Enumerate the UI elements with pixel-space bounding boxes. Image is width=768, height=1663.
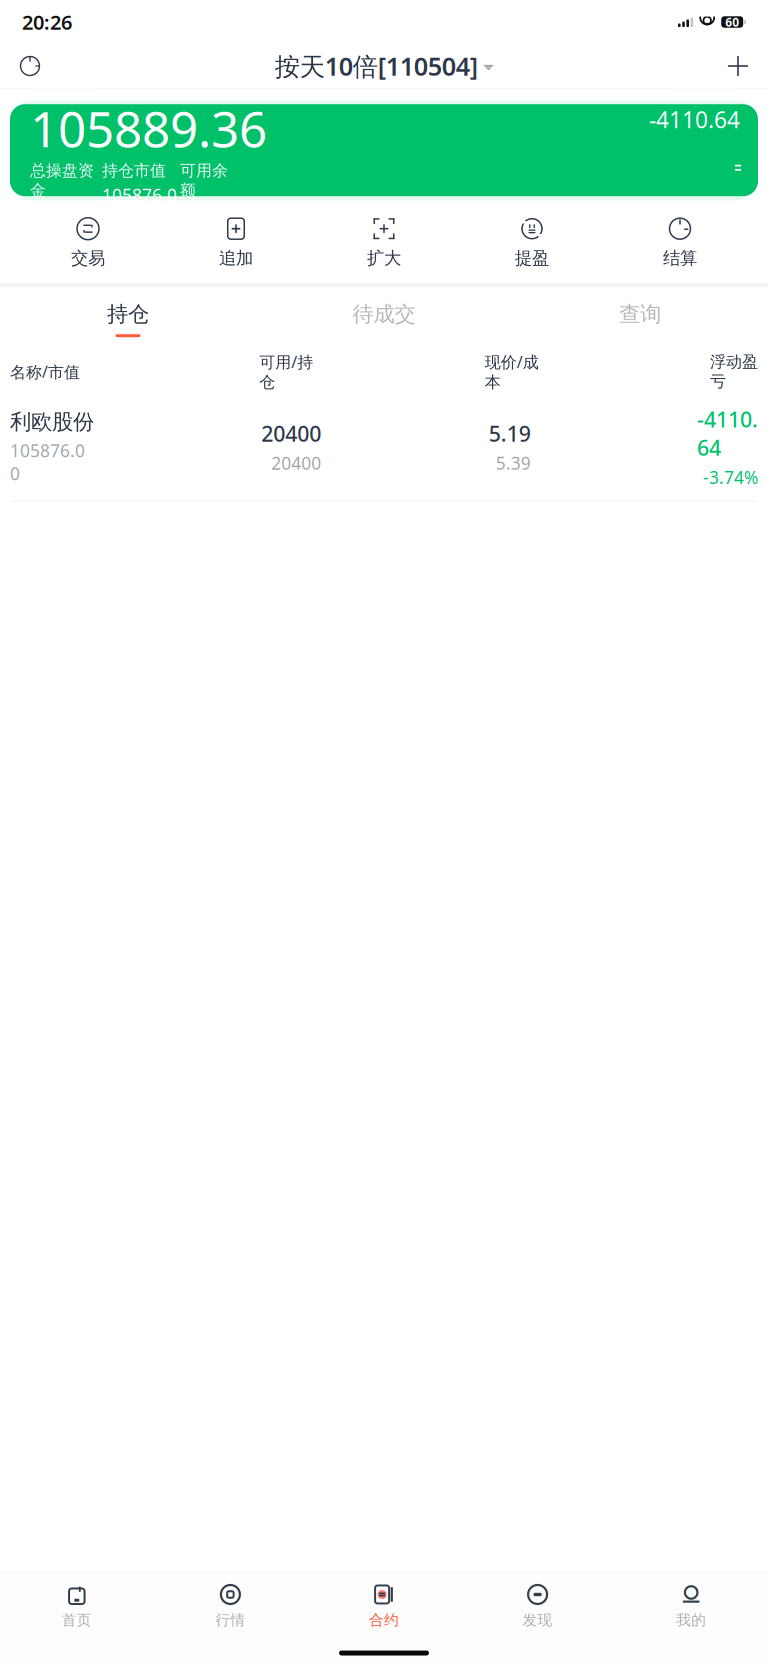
staticText: 名称/市值: [10, 361, 80, 382]
staticText: 行情: [215, 1611, 245, 1629]
staticText: 总操盘资金: [30, 161, 94, 200]
staticText: -4110.64: [697, 405, 758, 462]
button[interactable]: 待成交: [256, 299, 512, 339]
button[interactable]: 历史: [10, 44, 50, 88]
button[interactable]: 交易: [14, 213, 162, 273]
staticText: 利欧股份: [10, 409, 94, 435]
staticText: 浮动盈亏: [710, 352, 758, 391]
staticText: 待成交: [352, 301, 415, 327]
staticText: -3.74%: [703, 466, 758, 489]
staticText: 5.39: [496, 452, 531, 475]
staticText: 按天10倍[110504]: [275, 49, 478, 83]
staticText: 交易: [71, 248, 105, 269]
staticText: 合约: [369, 1611, 399, 1629]
button[interactable]: 持仓: [0, 299, 256, 339]
staticText: 105889.36: [30, 95, 267, 161]
staticText: 5.19: [489, 419, 531, 448]
staticText: 扩大: [367, 248, 401, 269]
button[interactable]: 查询: [512, 299, 768, 339]
staticText: 20400: [261, 419, 321, 448]
button[interactable]: 扩大: [310, 213, 458, 273]
button[interactable]: 追加: [162, 213, 310, 273]
staticText: 60: [725, 14, 739, 30]
staticText: -4110.64: [649, 104, 740, 134]
staticText: 持仓市值: [102, 161, 166, 181]
button[interactable]: 发现: [461, 1580, 614, 1631]
staticText: 可用余额: [180, 161, 228, 200]
button[interactable]: 行情: [154, 1580, 307, 1631]
staticText: 结算: [663, 248, 697, 269]
staticText: 我的: [676, 1611, 706, 1629]
staticText: 提盈: [515, 248, 549, 269]
staticText: 持仓: [107, 301, 149, 327]
staticText: 105876.00: [102, 184, 177, 230]
staticText: 首页: [62, 1611, 92, 1629]
staticText: 合约总值: [30, 74, 94, 93]
button[interactable]: 利欧股份: [0, 392, 768, 501]
staticText: 105876.00: [10, 439, 85, 485]
button[interactable]: 合约: [307, 1580, 461, 1631]
staticText: 查询: [619, 301, 661, 327]
staticText: 浮动盈亏: [676, 75, 740, 94]
staticText: 现价/成本: [485, 351, 539, 392]
button[interactable]: 首页: [0, 1580, 154, 1631]
staticText: 110000: [30, 203, 90, 226]
button[interactable]: 合约总值: [10, 104, 758, 196]
button[interactable]: 添加: [718, 44, 758, 88]
button[interactable]: 结算: [606, 213, 754, 273]
staticText: 20:26: [22, 9, 72, 35]
staticText: 可用/持仓: [259, 351, 313, 392]
button[interactable]: 提盈: [458, 213, 606, 273]
staticText: 发现: [523, 1611, 553, 1629]
staticText: 20400: [271, 452, 321, 475]
staticText: 追加: [219, 248, 253, 269]
button[interactable]: 我的: [614, 1580, 768, 1631]
